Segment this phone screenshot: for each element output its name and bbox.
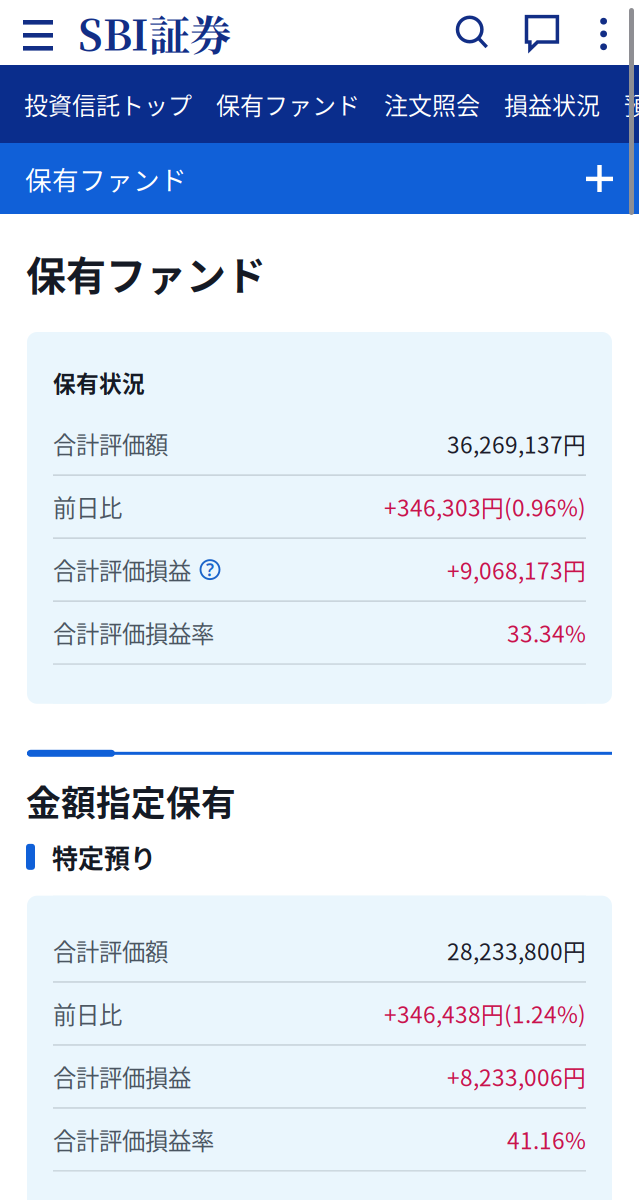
staticText: +9,068,173円 <box>447 553 586 586</box>
staticText: 合計評価損益 <box>53 553 191 586</box>
button[interactable]: Menu <box>0 0 78 65</box>
staticText: +346,303円(0.96%) <box>384 490 586 523</box>
button[interactable]: 保有ファンド <box>204 65 372 143</box>
staticText: 投資信託トップ <box>24 87 192 121</box>
staticText: 36,269,137円 <box>447 427 586 460</box>
staticText: +8,233,006円 <box>447 1060 586 1093</box>
staticText: 特定預り <box>52 838 156 876</box>
staticText: 合計評価額 <box>53 934 168 967</box>
staticText: +346,438円(1.24%) <box>384 997 586 1030</box>
button[interactable]: 注文照会 <box>372 65 492 143</box>
button[interactable]: Messages <box>507 1 582 64</box>
staticText: 保有ファンド <box>25 159 187 198</box>
staticText: 33.34% <box>507 616 586 649</box>
button[interactable]: 投資信託トップ <box>12 65 204 143</box>
button[interactable]: Search <box>438 0 507 65</box>
staticText: 合計評価額 <box>53 427 168 460</box>
staticText: 前日比 <box>53 997 122 1030</box>
staticText: 合計評価損益率 <box>53 1123 214 1156</box>
button[interactable]: 預り <box>612 65 639 143</box>
staticText: 28,233,800円 <box>447 934 586 967</box>
staticText: 41.16% <box>507 1123 586 1156</box>
staticText: 保有ファンド <box>26 244 266 302</box>
staticText: 預り <box>624 87 639 121</box>
button[interactable]: 損益状況 <box>492 65 612 143</box>
button[interactable]: Add <box>586 165 613 192</box>
staticText: SBI証券 <box>78 3 231 62</box>
staticText: ? <box>206 558 214 581</box>
staticText: 注文照会 <box>384 87 480 121</box>
staticText: 保有状況 <box>53 366 145 399</box>
staticText: 保有ファンド <box>216 87 360 121</box>
staticText: 金額指定保有 <box>26 776 236 826</box>
staticText: 合計評価損益 <box>53 1060 191 1093</box>
staticText: 合計評価損益率 <box>53 616 214 649</box>
staticText: 損益状況 <box>504 87 600 121</box>
staticText: 前日比 <box>53 490 122 523</box>
button[interactable]: More options <box>582 0 639 65</box>
